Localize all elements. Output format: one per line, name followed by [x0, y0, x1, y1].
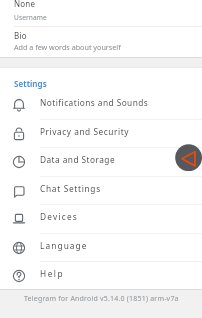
- button[interactable]: Notifications and Sounds: [0, 90, 202, 119]
- staticText: Chat Settings: [40, 183, 101, 194]
- staticText: Telegram for Android v5.14.0 (1851) arm-…: [24, 294, 179, 304]
- staticText: Notifications and Sounds: [40, 97, 149, 108]
- staticText: Add a few words about yourself: [14, 42, 121, 52]
- staticText: Devices: [40, 211, 78, 222]
- button[interactable]: Chat Settings: [0, 176, 202, 205]
- staticText: Settings: [14, 78, 47, 89]
- staticText: Language: [40, 240, 88, 251]
- button[interactable]: Help: [0, 261, 202, 290]
- button[interactable]: Devices: [0, 204, 202, 233]
- staticText: Help: [40, 268, 65, 279]
- staticText: Data and Storage: [40, 154, 116, 165]
- staticText: None: [14, 0, 36, 9]
- button[interactable]: None: [0, 0, 202, 26]
- staticText: Username: [14, 13, 47, 22]
- button[interactable]: Bio: [0, 27, 202, 57]
- button[interactable]: Language: [0, 233, 202, 262]
- button[interactable]: Data and Storage: [0, 147, 202, 176]
- staticText: Privacy and Security: [40, 126, 130, 137]
- button[interactable]: Privacy and Security: [0, 119, 202, 148]
- staticText: Bio: [14, 30, 27, 41]
